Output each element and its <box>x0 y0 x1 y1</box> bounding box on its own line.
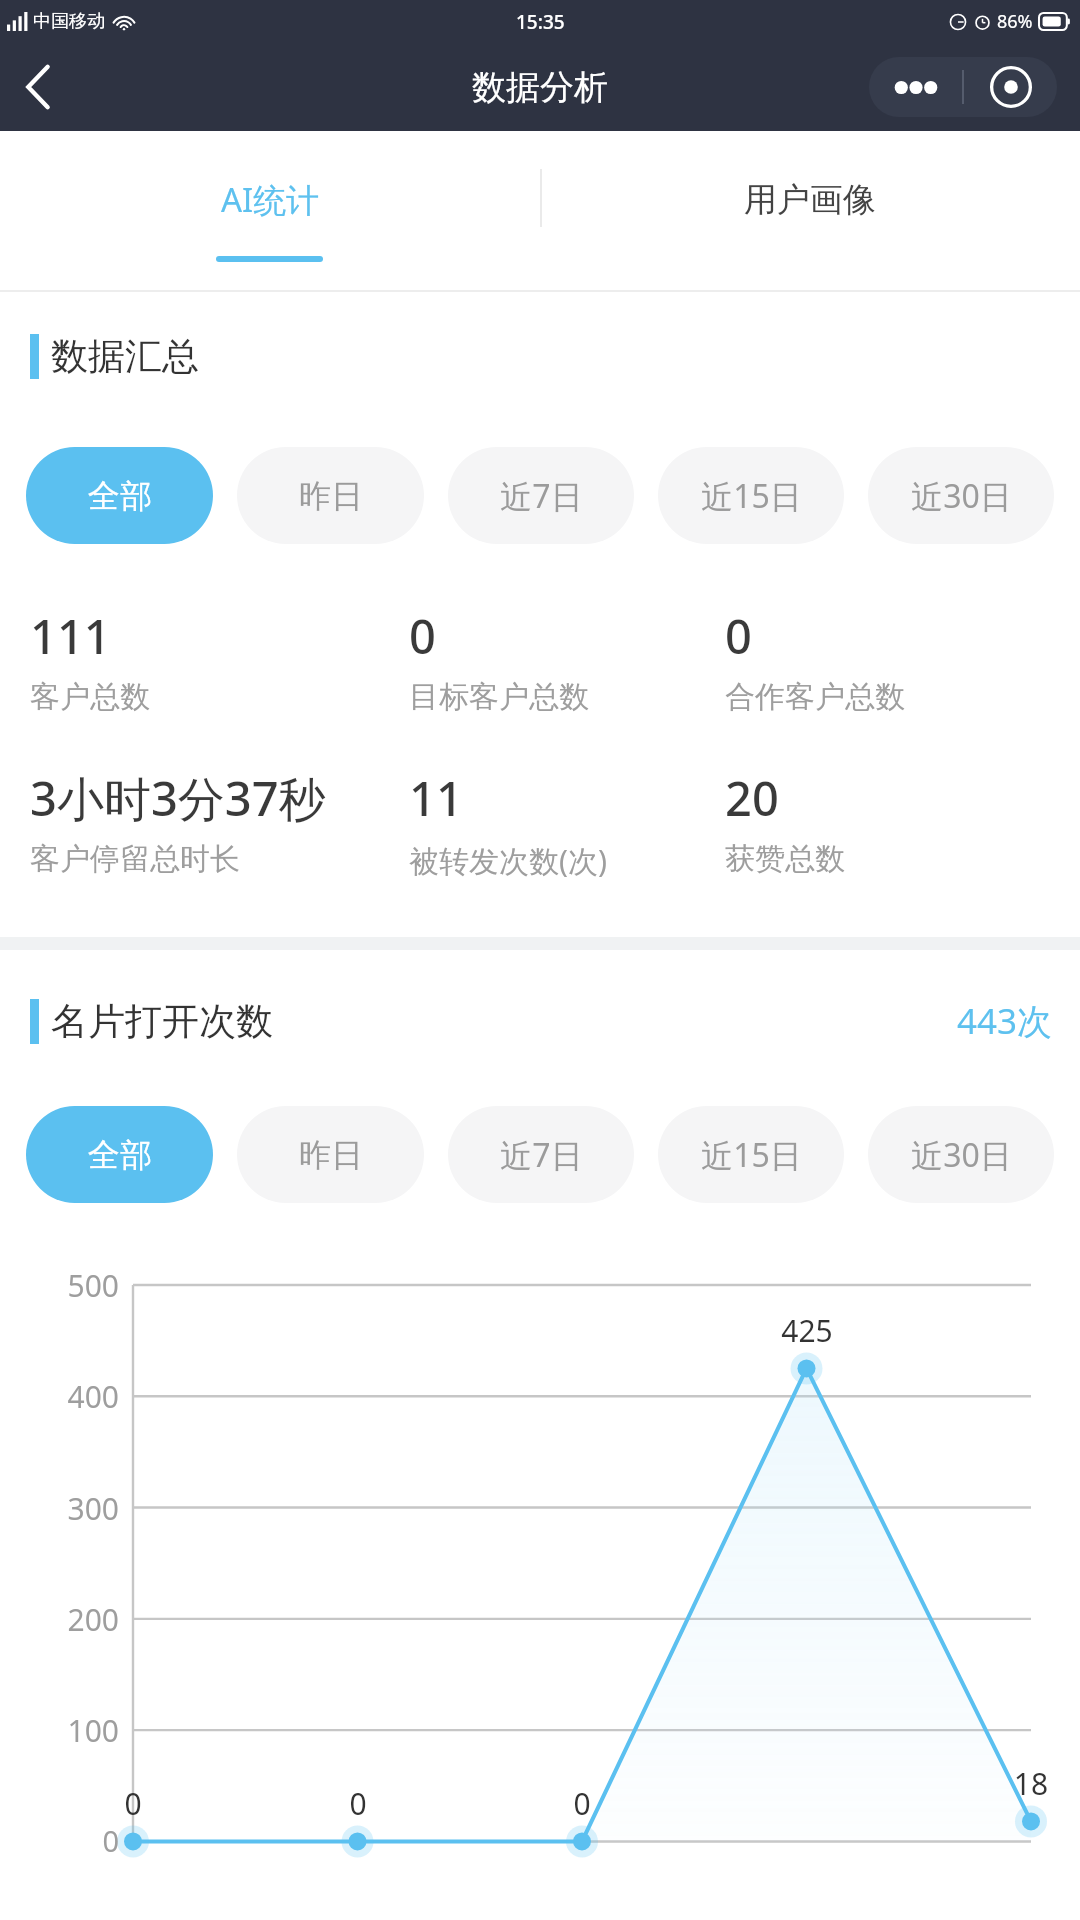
button[interactable]: 近15日 <box>658 1106 844 1203</box>
staticText: 名片打开次数 <box>51 998 273 1045</box>
button[interactable]: 近7日 <box>448 447 634 544</box>
staticText: 客户总数 <box>30 678 150 716</box>
button[interactable]: AI统计 <box>0 131 540 292</box>
staticText: 全部 <box>88 476 152 516</box>
staticText: 客户停留总时长 <box>30 840 240 878</box>
staticText: 425 <box>774 1310 840 1351</box>
staticText: 18 <box>998 1763 1064 1804</box>
staticText: 15:35 <box>516 9 565 35</box>
staticText: 近15日 <box>701 474 802 518</box>
staticText: 近30日 <box>911 474 1012 518</box>
staticText: 0 <box>100 1783 166 1824</box>
staticText: 100 <box>0 1710 119 1751</box>
staticText: 300 <box>0 1488 119 1529</box>
staticText: 昨日 <box>299 476 363 516</box>
staticText: 400 <box>0 1376 119 1417</box>
staticText: 数据汇总 <box>51 333 199 380</box>
staticText: 11 <box>409 766 463 830</box>
staticText: 近30日 <box>911 1133 1012 1177</box>
button[interactable]: 用户画像 <box>540 131 1080 292</box>
staticText: 0 <box>725 604 752 668</box>
staticText: 0 <box>549 1783 615 1824</box>
button[interactable]: 全部 <box>26 1106 213 1203</box>
button[interactable]: 昨日 <box>237 1106 424 1203</box>
staticText: 20 <box>725 766 779 830</box>
staticText: 近7日 <box>500 474 583 518</box>
staticText: 近15日 <box>701 1133 802 1177</box>
button[interactable]: 近30日 <box>868 1106 1054 1203</box>
staticText: 中国移动 <box>33 10 105 33</box>
staticText: 111 <box>30 604 111 668</box>
staticText: 86% <box>997 9 1033 34</box>
staticText: 被转发次数(次) <box>409 840 607 881</box>
staticText: 合作客户总数 <box>725 678 905 716</box>
button[interactable]: 近15日 <box>658 447 844 544</box>
staticText: 用户画像 <box>744 179 876 221</box>
staticText: 0 <box>0 1821 119 1860</box>
staticText: 昨日 <box>299 1135 363 1175</box>
staticText: 0 <box>409 604 436 668</box>
staticText: 获赞总数 <box>725 840 845 878</box>
staticText: 0 <box>325 1783 391 1824</box>
staticText: 3小时3分37秒 <box>30 766 326 830</box>
staticText: 目标客户总数 <box>409 678 589 716</box>
button[interactable]: 近7日 <box>448 1106 634 1203</box>
staticText: 全部 <box>88 1135 152 1175</box>
staticText: 数据分析 <box>472 66 608 109</box>
button[interactable]: Back <box>0 43 76 131</box>
staticText: 500 <box>0 1265 119 1306</box>
button[interactable]: 近30日 <box>868 447 1054 544</box>
staticText: 443次 <box>957 997 1053 1045</box>
staticText: 200 <box>0 1599 119 1640</box>
staticText: 近7日 <box>500 1133 583 1177</box>
button[interactable]: 全部 <box>26 447 213 544</box>
button[interactable]: More options <box>869 57 962 117</box>
button[interactable]: Target <box>964 57 1057 117</box>
button[interactable]: 昨日 <box>237 447 424 544</box>
staticText: AI统计 <box>221 177 320 222</box>
